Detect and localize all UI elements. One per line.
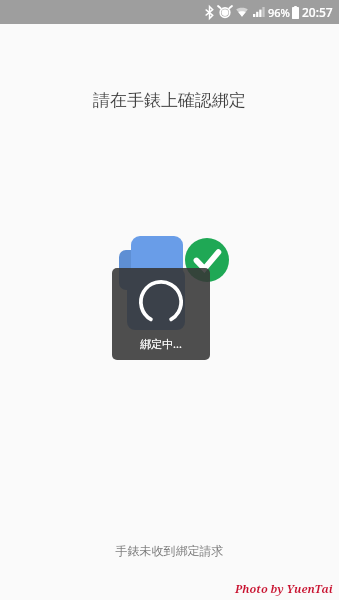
staticText: 綁定中... (112, 336, 210, 351)
staticText: 96% (268, 5, 290, 20)
button[interactable]: 手錶未收到綁定請求 (0, 539, 339, 562)
staticText: 請在手錶上確認綁定 (0, 90, 339, 111)
button[interactable]: 綁定中 (112, 268, 210, 360)
staticText: 20:57 (302, 4, 333, 20)
staticText: Photo by YuenTai (235, 581, 333, 596)
